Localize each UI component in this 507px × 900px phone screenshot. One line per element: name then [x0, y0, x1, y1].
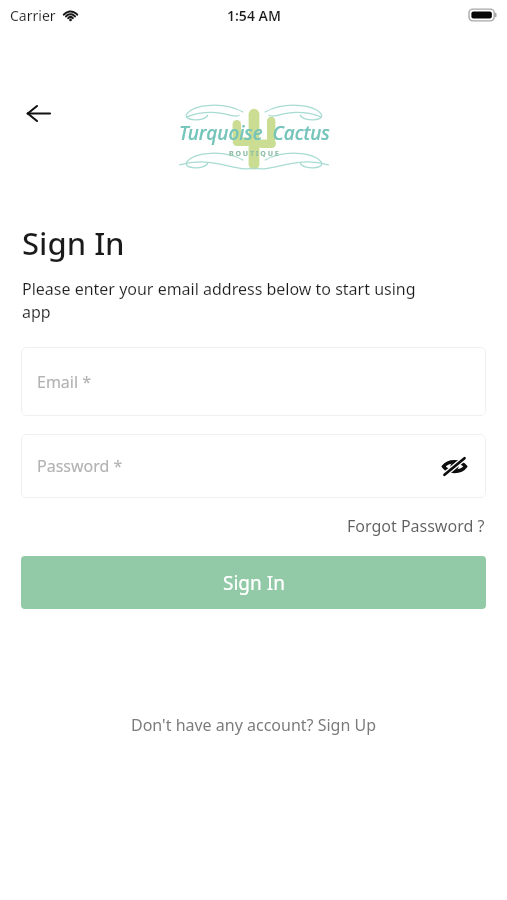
staticText: B O U T I Q U E: [229, 149, 279, 159]
staticText: Carrier: [10, 6, 56, 25]
staticText: Please enter your email address below to…: [22, 278, 445, 323]
staticText: Sign In: [22, 222, 125, 264]
staticText: Sign In: [223, 570, 285, 596]
button[interactable]: Show password: [436, 448, 472, 484]
staticText: Password *: [37, 455, 123, 477]
button[interactable]: Forgot Password ?: [344, 512, 488, 540]
staticText: Email *: [37, 371, 92, 393]
button[interactable]: Don't have any account? Sign Up: [123, 709, 384, 741]
staticText: 1:54 AM: [227, 6, 281, 25]
staticText: Don't have any account? Sign Up: [131, 714, 376, 736]
staticText: Forgot Password ?: [347, 515, 485, 537]
button[interactable]: Email *: [21, 347, 486, 416]
button[interactable]: Password *: [21, 434, 486, 498]
button[interactable]: Sign In: [21, 556, 486, 609]
staticText: Turquoise Cactus: [179, 120, 330, 146]
button[interactable]: Back: [17, 92, 59, 134]
